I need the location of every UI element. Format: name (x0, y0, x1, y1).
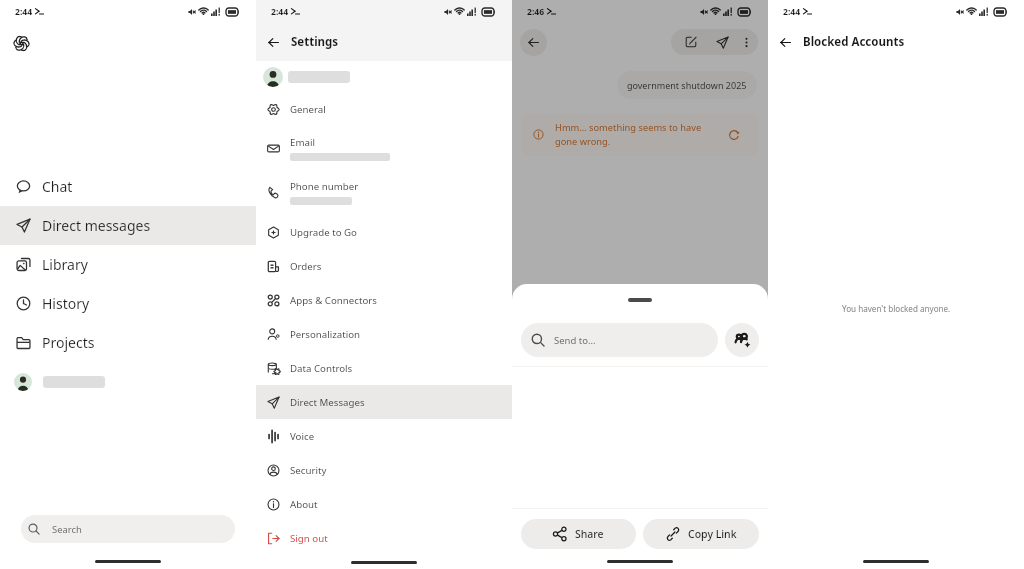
button[interactable] (0, 362, 256, 401)
button[interactable]: Direct messages (0, 206, 256, 245)
button[interactable]: Orders (256, 249, 512, 283)
button[interactable]: Back (256, 25, 291, 60)
button[interactable]: Security (256, 453, 512, 487)
button[interactable]: Phone number (256, 170, 512, 215)
staticText: Phone number (290, 180, 359, 193)
staticText: Chat (42, 177, 73, 196)
button[interactable]: Apps & Connectors (256, 283, 512, 317)
button[interactable]: Back (520, 29, 547, 56)
button[interactable]: More options (738, 30, 755, 54)
button[interactable]: Direct Messages (256, 385, 512, 419)
staticText: Settings (291, 34, 339, 50)
button[interactable]: History (0, 284, 256, 323)
staticText: Direct messages (42, 216, 151, 235)
button[interactable]: Voice (256, 419, 512, 453)
button[interactable]: Sign out (256, 521, 512, 555)
button[interactable]: Send to… (521, 323, 718, 357)
staticText: Data Controls (290, 362, 353, 375)
staticText: 2:44 (15, 6, 33, 18)
staticText: Personalization (290, 328, 361, 341)
staticText: Share (575, 527, 604, 541)
staticText: 2:44 (783, 6, 801, 18)
staticText: Orders (290, 260, 322, 273)
button[interactable]: General (256, 92, 512, 126)
other: OpenAI (12, 34, 31, 53)
staticText: Send to… (554, 334, 596, 347)
staticText: Security (290, 464, 327, 477)
staticText: Projects (42, 333, 95, 352)
staticText: About (290, 498, 318, 511)
button[interactable]: Share (521, 519, 636, 549)
staticText: Apps & Connectors (290, 294, 377, 307)
staticText: History (42, 294, 90, 313)
button[interactable]: Search (21, 515, 235, 543)
staticText: General (290, 103, 326, 116)
button[interactable] (256, 61, 512, 92)
button[interactable]: Projects (0, 323, 256, 362)
button[interactable]: Chat (0, 167, 256, 206)
button[interactable]: Library (0, 245, 256, 284)
button[interactable]: Retry (727, 128, 740, 141)
staticText: Copy Link (688, 527, 737, 541)
staticText: 2:46 (527, 6, 545, 18)
button[interactable]: Data Controls (256, 351, 512, 385)
staticText: Voice (290, 430, 315, 443)
button[interactable]: Email (256, 126, 512, 170)
staticText: Search (52, 523, 82, 536)
button[interactable]: Send (707, 30, 738, 54)
staticText: Sign out (290, 532, 328, 545)
staticText: Hmm… something seems to have gone wrong. (555, 121, 727, 148)
staticText: Email (290, 136, 315, 149)
button[interactable]: About (256, 487, 512, 521)
staticText: You haven't blocked anyone. (842, 303, 951, 314)
staticText: Direct Messages (290, 396, 365, 409)
button[interactable]: New chat (674, 30, 707, 54)
button[interactable]: Upgrade to Go (256, 215, 512, 249)
button[interactable]: Copy Link (643, 519, 759, 549)
button[interactable]: Add people (725, 323, 759, 357)
button[interactable]: Back (768, 25, 803, 60)
staticText: Blocked Accounts (803, 34, 905, 50)
staticText: Library (42, 255, 88, 274)
button[interactable]: Personalization (256, 317, 512, 351)
staticText: 2:44 (271, 6, 289, 18)
staticText: government shutdown 2025 (627, 79, 747, 91)
staticText: Upgrade to Go (290, 226, 357, 239)
